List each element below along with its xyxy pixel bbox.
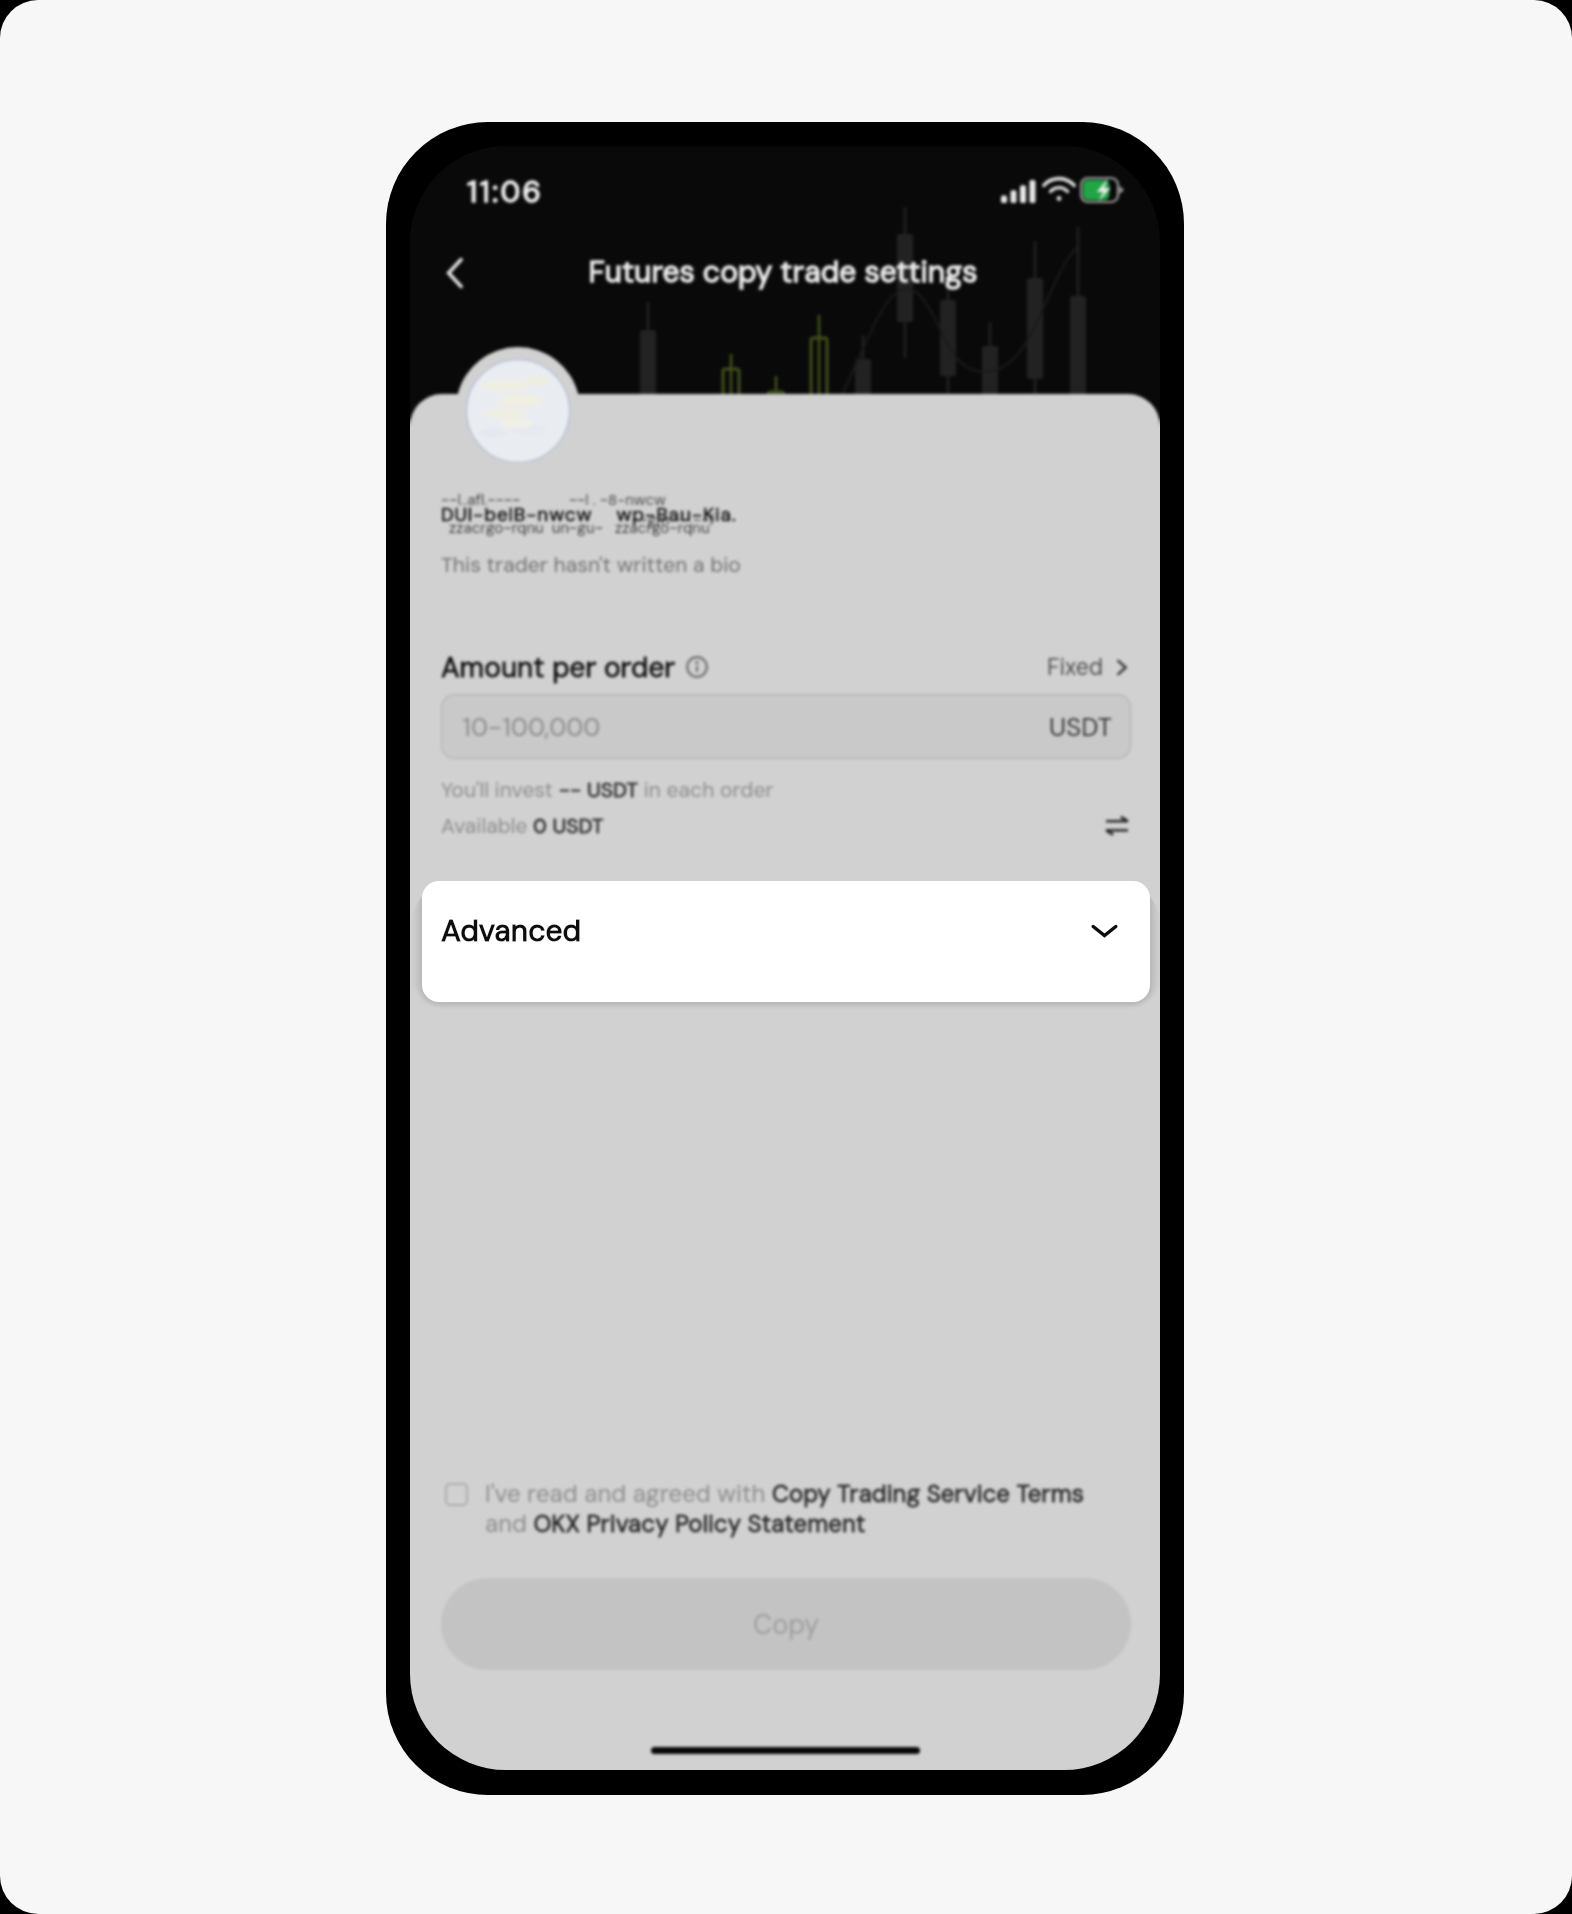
button[interactable]: Back xyxy=(428,245,484,301)
button[interactable]: Fixed xyxy=(1047,652,1131,682)
staticText: 11:06 xyxy=(467,172,544,211)
staticText: I've read and agreed with Copy Trading S… xyxy=(485,1478,1125,1539)
staticText: Available 0 USDT xyxy=(441,812,604,839)
staticText: Futures copy trade settings xyxy=(588,252,978,291)
button[interactable]: 10-100,000 xyxy=(441,694,1131,759)
staticText: USDT xyxy=(1049,710,1113,744)
staticText: DUl-belB-nwcw wp-Bau-Kia. xyxy=(441,502,737,527)
button[interactable]: I've read and agreed with Copy Trading S… xyxy=(446,1478,1126,1539)
staticText: You'll invest -- USDT in each order xyxy=(441,776,774,803)
staticText: This trader hasn't written a bio xyxy=(441,551,741,578)
staticText: 10-100,000 xyxy=(462,710,601,744)
staticText: Fixed xyxy=(1047,652,1104,682)
staticText: Copy xyxy=(753,1607,820,1642)
staticText: ~~l..afl.~~~~ ~~l . ~8-nwcw xyxy=(441,490,666,510)
staticText: ~~gm~~ ,~~f xyxy=(631,510,715,530)
button[interactable]: About amount per order xyxy=(686,656,708,678)
staticText: Advanced xyxy=(441,911,582,950)
button[interactable]: Transfer funds xyxy=(1105,814,1129,838)
button[interactable]: Advanced xyxy=(422,881,1150,1002)
staticText: Amount per order xyxy=(441,649,676,685)
staticText: zzacrgo~rqnu un~gu~ zzacrgo~rqnu xyxy=(441,518,710,538)
